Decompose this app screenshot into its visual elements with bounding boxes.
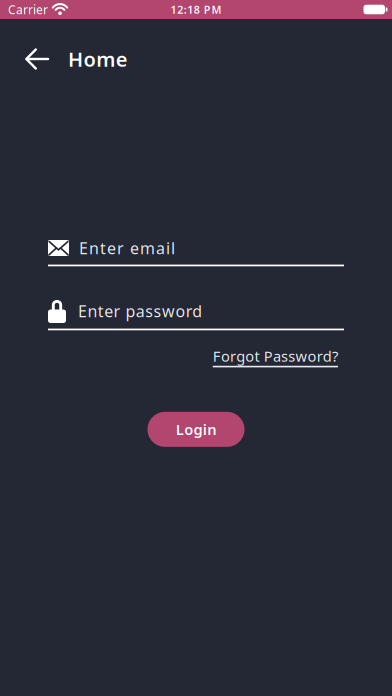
staticText: Home <box>68 46 128 72</box>
button[interactable] <box>25 48 49 69</box>
staticText: Login <box>176 420 216 439</box>
staticText: 12:18 PM <box>171 2 221 17</box>
staticText: Enter password <box>78 300 202 322</box>
button[interactable]: Login <box>147 412 244 447</box>
button[interactable]: Enter email <box>48 240 344 266</box>
staticText: Carrier <box>8 1 48 17</box>
button[interactable]: Enter password <box>48 299 344 330</box>
button[interactable]: Forgot Password? <box>213 346 338 367</box>
staticText: Forgot Password? <box>213 346 338 366</box>
staticText: Enter email <box>79 237 175 259</box>
